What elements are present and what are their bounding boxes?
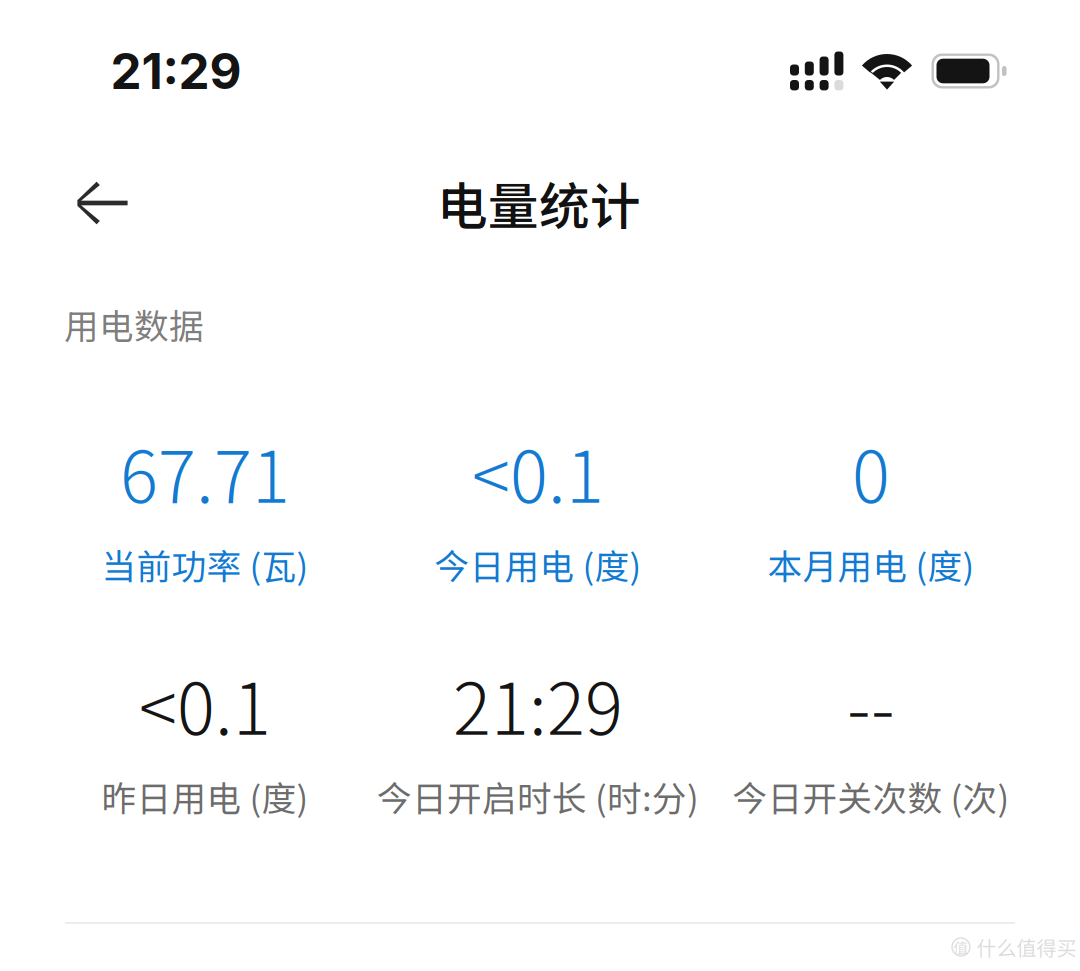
staticText: 今日开关次数 (次)	[732, 771, 1009, 821]
staticText: 今日用电 (度)	[434, 539, 641, 589]
staticText: 用电数据	[64, 299, 204, 349]
staticText: --	[847, 653, 895, 755]
staticText: 21:29	[453, 653, 623, 755]
staticText: 本月用电 (度)	[767, 539, 974, 589]
staticText: 昨日用电 (度)	[101, 771, 308, 821]
staticText: 当前功率 (瓦)	[101, 539, 308, 589]
staticText: 21:29	[110, 41, 241, 101]
staticText: 67.71	[120, 421, 290, 523]
button[interactable]: Back	[40, 147, 164, 259]
staticText: <0.1	[139, 653, 271, 755]
staticText: 0	[852, 421, 890, 523]
staticText: 今日开启时长 (时:分)	[377, 771, 699, 821]
staticText: <0.1	[472, 421, 604, 523]
staticText: 值	[953, 936, 968, 958]
staticText: 电量统计	[437, 166, 641, 240]
staticText: 什么值得买	[976, 932, 1076, 961]
